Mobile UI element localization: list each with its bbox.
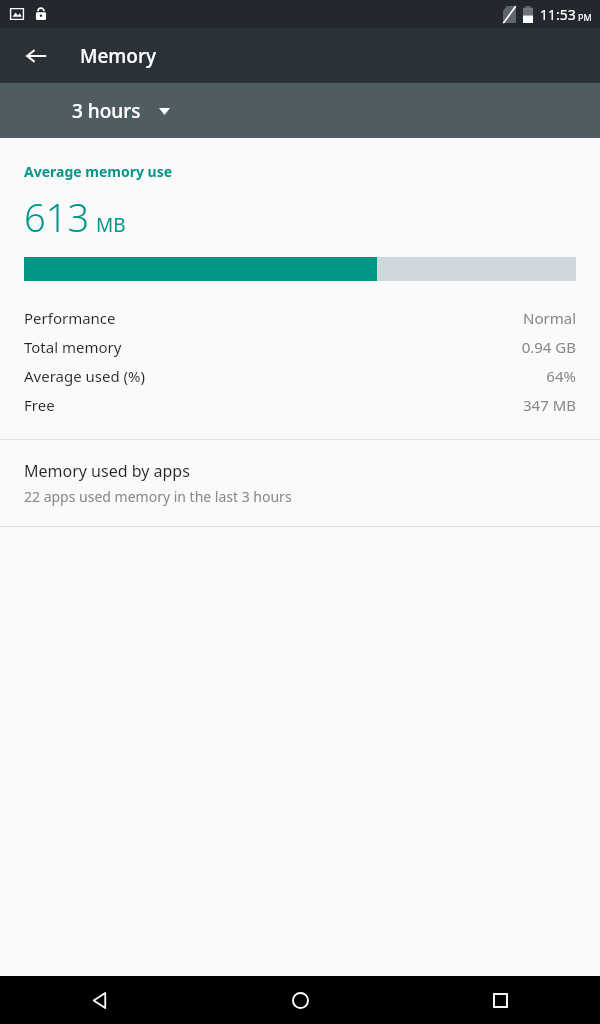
- staticText: Normal: [523, 308, 576, 328]
- button[interactable]: 3 hours: [56, 90, 186, 132]
- staticText: 64%: [546, 366, 576, 386]
- staticText: Memory: [80, 43, 157, 69]
- button[interactable]: Recent apps: [400, 976, 600, 1024]
- staticText: Average memory use: [24, 162, 173, 181]
- staticText: 22 apps used memory in the last 3 hours: [24, 487, 292, 506]
- staticText: Free: [24, 395, 55, 415]
- staticText: Performance: [24, 308, 116, 328]
- button[interactable]: Home: [200, 976, 400, 1024]
- staticText: 613: [24, 191, 90, 243]
- button[interactable]: Navigate up: [12, 32, 60, 80]
- staticText: Average used (%): [24, 366, 146, 386]
- staticText: MB: [96, 212, 126, 238]
- button[interactable]: Back: [0, 976, 200, 1024]
- staticText: 11:53: [540, 5, 576, 24]
- staticText: 347 MB: [523, 395, 576, 415]
- staticText: PM: [578, 11, 592, 23]
- button[interactable]: Memory used by apps: [0, 440, 600, 526]
- staticText: Memory used by apps: [24, 460, 190, 482]
- staticText: 0.94 GB: [521, 337, 576, 357]
- staticText: 3 hours: [72, 98, 141, 124]
- staticText: Total memory: [24, 337, 122, 357]
